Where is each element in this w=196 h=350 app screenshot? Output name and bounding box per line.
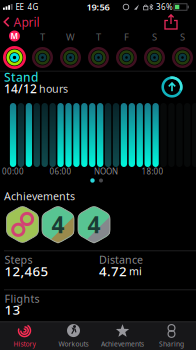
button[interactable]: Workouts	[49, 322, 97, 349]
staticText: Sharing	[159, 340, 184, 348]
staticText: Distance	[99, 252, 143, 267]
staticText: Achievements	[101, 340, 144, 348]
button[interactable]: Sharing	[147, 322, 195, 349]
button[interactable]: April Challenge achievement	[78, 205, 110, 243]
staticText: Achievements	[4, 189, 75, 203]
staticText: F	[124, 31, 129, 43]
staticText: 13	[4, 301, 20, 318]
staticText: 19:56	[86, 1, 109, 13]
staticText: hours	[39, 81, 68, 96]
staticText: 4G	[27, 2, 38, 12]
button[interactable]: Day M	[1, 29, 27, 69]
staticText: 4.72	[99, 262, 127, 280]
staticText: 4	[51, 209, 64, 239]
staticText: 4	[87, 209, 100, 239]
staticText: 06:00	[49, 166, 71, 177]
staticText: W	[66, 31, 75, 43]
staticText: 00:00	[2, 166, 24, 177]
staticText: 36%	[156, 2, 173, 12]
staticText: 12,465	[4, 262, 48, 280]
button[interactable]: Share	[164, 14, 178, 30]
staticText: S	[180, 31, 185, 43]
staticText: S	[152, 31, 157, 43]
staticText: Stand	[4, 69, 38, 85]
button[interactable]: Day W	[57, 29, 83, 69]
staticText: 18:00	[141, 166, 163, 177]
button[interactable]: April	[0, 13, 42, 31]
staticText: History	[13, 340, 35, 348]
button[interactable]: April Challenge achievement	[42, 205, 74, 243]
button[interactable]: History	[0, 322, 48, 349]
button[interactable]: Day S	[141, 29, 167, 69]
staticText: Flights	[4, 291, 39, 306]
staticText: mi	[129, 264, 142, 278]
staticText: Steps	[4, 252, 32, 267]
staticText: M	[10, 31, 18, 41]
button[interactable]: Perfect Week achievement	[6, 205, 38, 243]
staticText: EE	[15, 2, 23, 12]
button[interactable]: Collapse chart	[161, 76, 183, 98]
button[interactable]: Achievements	[98, 322, 147, 349]
staticText: NOON	[94, 166, 118, 177]
staticText: 14/12	[4, 80, 37, 96]
button[interactable]: Day F	[113, 29, 139, 69]
staticText: T	[96, 31, 101, 43]
button[interactable]: Day T	[85, 29, 111, 69]
staticText: T	[40, 31, 45, 43]
staticText: April	[13, 14, 39, 30]
staticText: Workouts	[58, 340, 88, 348]
button[interactable]: Day S	[169, 29, 195, 69]
button[interactable]: Day T	[29, 29, 55, 69]
